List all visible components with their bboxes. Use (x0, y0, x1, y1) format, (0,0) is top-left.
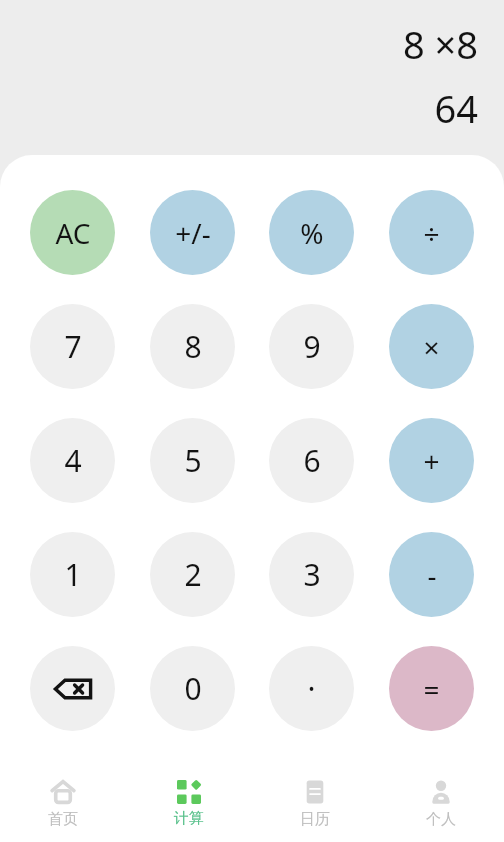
staticText: AC (55, 214, 91, 252)
staticText: 3 (303, 554, 321, 595)
button[interactable]: + (389, 418, 474, 503)
button[interactable]: 4 (30, 418, 115, 503)
staticText: ÷ (423, 214, 440, 252)
staticText: 8 (184, 326, 202, 367)
staticText: 6 (303, 440, 321, 481)
staticText: +/- (175, 214, 211, 252)
staticText: 5 (184, 440, 202, 481)
button[interactable]: ÷ (389, 190, 474, 275)
button[interactable]: 1 (30, 532, 115, 617)
button[interactable]: Backspace (30, 646, 115, 731)
button[interactable]: 日历 (252, 765, 378, 842)
staticText: 64 (434, 82, 478, 134)
button[interactable]: 0 (150, 646, 235, 731)
staticText: 计算 (174, 809, 204, 828)
staticText: 1 (64, 554, 82, 595)
button[interactable]: AC (30, 190, 115, 275)
staticText: % (300, 214, 324, 252)
button[interactable]: = (389, 646, 474, 731)
button[interactable]: · (269, 646, 354, 731)
staticText: 0 (184, 668, 202, 709)
button[interactable]: % (269, 190, 354, 275)
staticText: 4 (64, 440, 82, 481)
button[interactable]: 7 (30, 304, 115, 389)
button[interactable]: 8 (150, 304, 235, 389)
staticText: 日历 (300, 810, 330, 829)
button[interactable]: × (389, 304, 474, 389)
button[interactable]: +/- (150, 190, 235, 275)
staticText: = (423, 670, 440, 708)
button[interactable]: 计算 (126, 765, 252, 842)
button[interactable]: 个人 (378, 765, 504, 842)
button[interactable]: 首页 (0, 765, 126, 842)
button[interactable]: 3 (269, 532, 354, 617)
staticText: 9 (303, 326, 321, 367)
button[interactable]: 2 (150, 532, 235, 617)
button[interactable]: 9 (269, 304, 354, 389)
staticText: - (427, 556, 437, 594)
staticText: 7 (64, 326, 82, 367)
button[interactable]: 6 (269, 418, 354, 503)
staticText: 个人 (426, 810, 456, 829)
staticText: + (423, 442, 440, 480)
staticText: × (423, 328, 440, 366)
staticText: 2 (184, 554, 202, 595)
button[interactable]: - (389, 532, 474, 617)
button[interactable]: 5 (150, 418, 235, 503)
staticText: 首页 (48, 810, 78, 829)
staticText: · (307, 668, 316, 709)
staticText: 8 ×8 (402, 18, 478, 70)
